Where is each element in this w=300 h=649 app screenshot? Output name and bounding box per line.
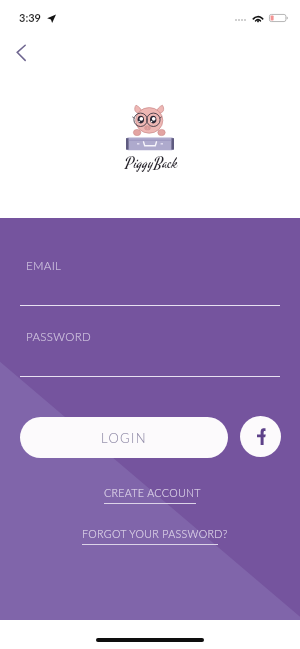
staticText: 3:39 xyxy=(19,11,41,24)
button[interactable]: LOGIN xyxy=(20,417,228,458)
staticText: LOGIN xyxy=(101,430,148,446)
button[interactable]: Back xyxy=(5,38,37,70)
button[interactable]: Sign in with Facebook xyxy=(240,416,281,457)
staticText: PiggyBack xyxy=(125,152,178,173)
staticText: CREATE ACCOUNT xyxy=(104,486,201,499)
staticText: FORGOT YOUR PASSWORD? xyxy=(82,527,228,540)
button[interactable]: CREATE ACCOUNT xyxy=(104,486,201,499)
staticText: EMAIL xyxy=(26,259,62,273)
button[interactable]: FORGOT YOUR PASSWORD? xyxy=(82,527,228,540)
staticText: PASSWORD xyxy=(26,330,92,344)
